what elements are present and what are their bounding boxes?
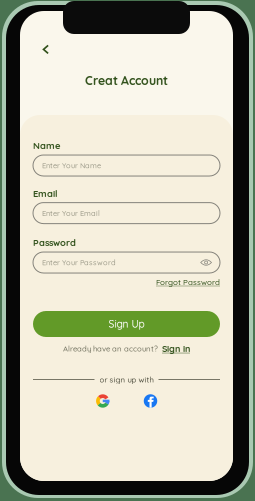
button[interactable]: Forgot Password (33, 277, 220, 287)
staticText: or sign up with (99, 375, 153, 384)
staticText: Sign in (162, 343, 190, 354)
staticText: Enter Your Name (42, 161, 101, 170)
button[interactable]: Sign up with Google (96, 394, 110, 408)
button[interactable]: Sign in (162, 343, 190, 354)
button[interactable]: Sign Up (33, 311, 220, 337)
staticText: Already have an account? (63, 344, 158, 353)
staticText: Sign Up (108, 318, 144, 330)
button[interactable]: Back (35, 38, 57, 60)
staticText: Name (33, 140, 61, 151)
staticText: Email (33, 188, 58, 199)
staticText: Enter Your Password (42, 258, 116, 267)
button[interactable]: Sign up with Facebook (144, 394, 157, 408)
staticText: Creat Account (85, 73, 168, 88)
staticText: Enter Your Email (42, 208, 100, 218)
staticText: Password (33, 237, 76, 248)
staticText: Forgot Password (156, 277, 220, 287)
